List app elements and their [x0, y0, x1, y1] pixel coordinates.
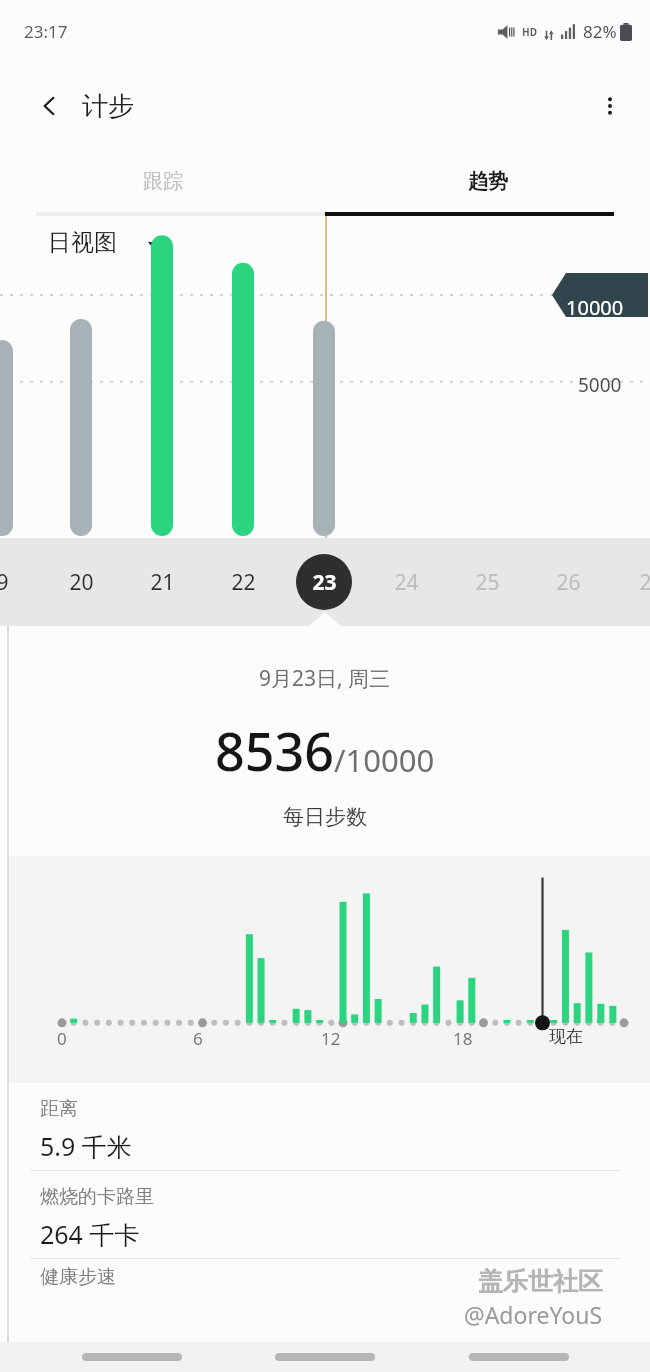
staticText: 5000	[578, 372, 622, 398]
button[interactable]: 趋势	[325, 150, 650, 212]
button[interactable]: 2	[616, 553, 650, 611]
button[interactable]: 9	[0, 553, 31, 611]
staticText: 22	[231, 568, 256, 597]
staticText: 264 千卡	[40, 1217, 140, 1251]
button[interactable]: 24	[377, 553, 435, 611]
staticText: 趋势	[468, 169, 508, 194]
button[interactable]: Back	[28, 84, 72, 128]
staticText: 5.9 千米	[40, 1129, 132, 1163]
button[interactable]: 22	[214, 553, 272, 611]
staticText: 8536	[215, 715, 334, 786]
staticText: 6	[193, 1027, 203, 1050]
staticText: 距离	[40, 1097, 78, 1121]
staticText: 9月23日, 周三	[259, 664, 391, 693]
button[interactable]: 跟踪	[0, 150, 325, 212]
staticText: 25	[475, 568, 500, 597]
staticText: 计步	[82, 90, 134, 123]
staticText: 23	[312, 568, 337, 597]
staticText: 23:17	[24, 20, 68, 43]
button[interactable]: 26	[539, 553, 597, 611]
staticText: 12	[321, 1027, 341, 1050]
button[interactable]: 距离	[0, 1083, 650, 1170]
staticText: 日视图	[48, 228, 117, 257]
button[interactable]: 21	[133, 553, 191, 611]
staticText: 0	[57, 1027, 67, 1050]
staticText: 9	[0, 568, 9, 597]
staticText: 18	[453, 1027, 473, 1050]
staticText: 24	[394, 568, 419, 597]
staticText: 跟踪	[143, 169, 183, 194]
staticText: 现在	[549, 1026, 583, 1047]
button[interactable]: Home	[263, 1342, 387, 1372]
staticText: 10000	[566, 294, 624, 321]
button[interactable]: Back	[457, 1342, 581, 1372]
staticText: 21	[150, 568, 175, 597]
button[interactable]: 25	[458, 553, 516, 611]
staticText: 燃烧的卡路里	[40, 1185, 154, 1209]
staticText: HD	[522, 25, 537, 39]
button[interactable]: Recents	[70, 1342, 194, 1372]
button[interactable]: More options	[588, 84, 632, 128]
staticText: /10000	[334, 739, 435, 781]
staticText: 盖乐世社区	[478, 1266, 603, 1297]
button[interactable]: 燃烧的卡路里	[0, 1171, 650, 1258]
staticText: 每日步数	[283, 804, 367, 830]
staticText: 健康步速	[40, 1265, 116, 1289]
button[interactable]: 20	[52, 553, 110, 611]
staticText: 26	[556, 568, 581, 597]
staticText: 2	[639, 568, 650, 597]
button[interactable]: 23	[295, 553, 353, 611]
button[interactable]: 0	[9, 856, 650, 1083]
staticText: @AdoreYouS	[464, 1299, 603, 1330]
staticText: 20	[69, 568, 94, 597]
button[interactable]: 健康步速	[0, 1259, 650, 1299]
staticText: 82%	[583, 20, 617, 43]
